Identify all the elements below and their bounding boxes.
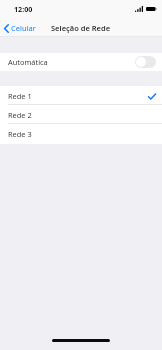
staticText: Seleção de Rede <box>51 23 111 33</box>
staticText: 12:00 <box>14 4 33 14</box>
staticText: Rede 1 <box>8 91 32 101</box>
staticText: Celular <box>11 23 36 33</box>
button[interactable]: Rede 2 <box>0 105 162 124</box>
staticText: Rede 2 <box>8 110 32 120</box>
staticText: Rede 3 <box>8 129 32 139</box>
staticText: Automática <box>8 57 48 67</box>
button[interactable]: Automática <box>0 53 162 71</box>
button[interactable]: Rede 3 <box>0 124 162 143</box>
button[interactable]: Rede 1 <box>0 86 162 105</box>
button[interactable]: Automatic network selection <box>135 56 156 68</box>
button[interactable]: Celular <box>3 21 37 35</box>
